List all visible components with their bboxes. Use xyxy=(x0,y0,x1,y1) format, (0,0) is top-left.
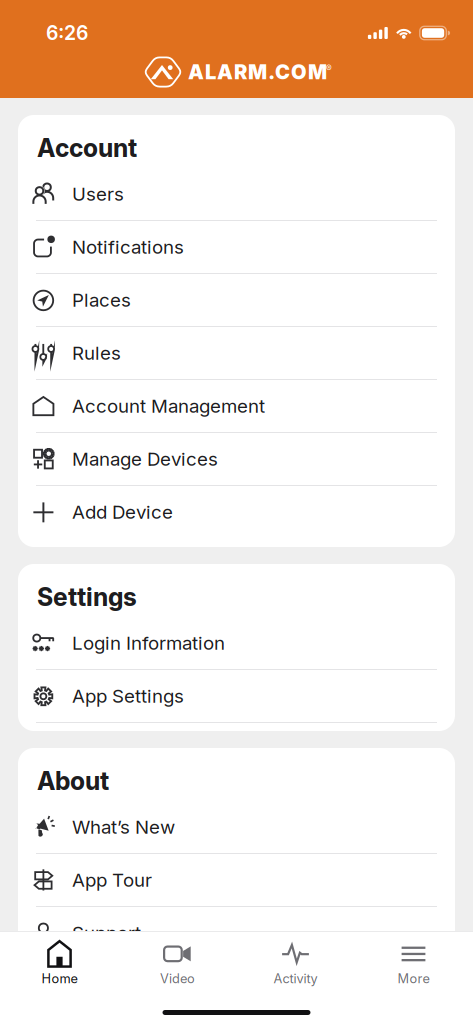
staticText: ALARM.COM xyxy=(188,60,327,84)
staticText: Add Device xyxy=(72,501,173,523)
button[interactable]: Rules xyxy=(18,327,455,380)
button[interactable]: Add Device xyxy=(18,486,455,539)
staticText: More xyxy=(397,971,429,986)
staticText: Rules xyxy=(72,342,121,364)
staticText: Users xyxy=(72,183,124,205)
staticText: App Settings xyxy=(72,685,184,707)
button[interactable]: Places xyxy=(18,274,455,327)
staticText: About xyxy=(37,766,109,796)
staticText: Notifications xyxy=(72,236,184,258)
staticText: Video xyxy=(160,971,195,986)
button[interactable]: More xyxy=(354,939,472,989)
staticText: Settings xyxy=(37,582,137,612)
button[interactable]: Manage Devices xyxy=(18,433,455,486)
staticText: Places xyxy=(72,289,131,311)
button[interactable]: Activity xyxy=(236,939,354,989)
staticText: Login Information xyxy=(72,632,225,654)
button[interactable]: Home xyxy=(0,939,118,989)
staticText: What’s New xyxy=(72,816,175,838)
button[interactable]: Login Information xyxy=(18,617,455,670)
button[interactable]: Support xyxy=(18,907,455,960)
staticText: Manage Devices xyxy=(72,448,218,470)
staticText: 6:26 xyxy=(46,21,88,45)
staticText: Support xyxy=(72,922,141,944)
staticText: App Tour xyxy=(72,869,152,891)
staticText: Terms & Conditions xyxy=(72,975,244,997)
staticText: Account xyxy=(37,133,137,163)
button[interactable]: Account Management xyxy=(18,380,455,433)
staticText: ® xyxy=(326,63,332,73)
button[interactable]: Users xyxy=(18,168,455,221)
button[interactable]: Terms & Conditions xyxy=(18,960,455,1013)
button[interactable]: App Settings xyxy=(18,670,455,723)
button[interactable]: What’s New xyxy=(18,801,455,854)
staticText: Activity xyxy=(273,971,317,986)
button[interactable]: Video xyxy=(118,939,236,989)
button[interactable]: App Tour xyxy=(18,854,455,907)
staticText: Account Management xyxy=(72,395,265,417)
staticText: Home xyxy=(41,971,77,986)
button[interactable]: Notifications xyxy=(18,221,455,274)
